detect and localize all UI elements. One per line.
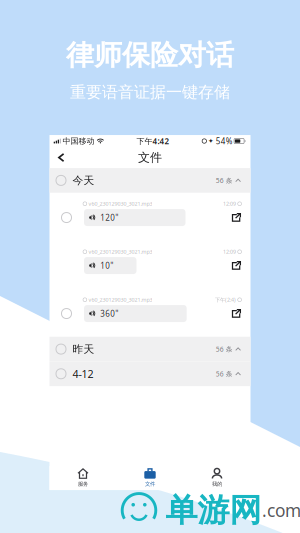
- button[interactable]: 4-12: [49, 361, 250, 386]
- button[interactable]: Share: [227, 305, 246, 322]
- button[interactable]: 120": [84, 209, 185, 226]
- staticText: 10": [100, 260, 113, 271]
- staticText: ✦: [208, 137, 214, 145]
- button[interactable]: Share: [227, 209, 246, 226]
- staticText: v60_230129030_3021.mp3: [88, 296, 152, 303]
- staticText: 360": [100, 308, 118, 319]
- staticText: 下午4:42: [137, 136, 170, 146]
- staticText: v60_230129030_3021.mp3: [88, 200, 152, 207]
- staticText: 重要语音证据一键存储: [70, 82, 230, 102]
- staticText: 54%: [216, 136, 233, 146]
- staticText: 12:09: [223, 248, 236, 255]
- staticText: 昨天: [72, 342, 94, 356]
- staticText: 文件: [138, 150, 162, 165]
- button[interactable]: 360": [84, 305, 187, 322]
- staticText: 56 条: [216, 369, 233, 378]
- staticText: 文件: [145, 481, 155, 487]
- button[interactable]: Select recording: [49, 305, 84, 322]
- staticText: .com: [262, 499, 300, 522]
- staticText: 下午(2:4): [215, 296, 236, 303]
- staticText: v60_230129030_3021.mp3: [88, 248, 152, 255]
- staticText: 中国移动: [63, 136, 95, 146]
- staticText: 今天: [72, 174, 94, 187]
- staticText: 律师保险对话: [66, 38, 234, 72]
- button[interactable]: 10": [84, 257, 136, 274]
- staticText: 服务: [78, 481, 88, 487]
- staticText: 56 条: [216, 176, 233, 185]
- button[interactable]: 文件: [116, 464, 183, 492]
- button[interactable]: 今天: [49, 168, 250, 193]
- button[interactable]: Share: [227, 257, 246, 274]
- button[interactable]: 服务: [49, 464, 116, 492]
- button[interactable]: 昨天: [49, 337, 250, 361]
- staticText: 单游网: [165, 491, 261, 530]
- button[interactable]: Back: [49, 150, 71, 165]
- staticText: 120": [100, 212, 118, 223]
- staticText: 4-12: [72, 367, 93, 381]
- button[interactable]: Select recording: [49, 209, 84, 226]
- staticText: 56 条: [216, 345, 233, 354]
- staticText: 12:09: [223, 200, 236, 207]
- button[interactable]: 我的: [183, 464, 250, 492]
- staticText: 我的: [212, 481, 222, 487]
